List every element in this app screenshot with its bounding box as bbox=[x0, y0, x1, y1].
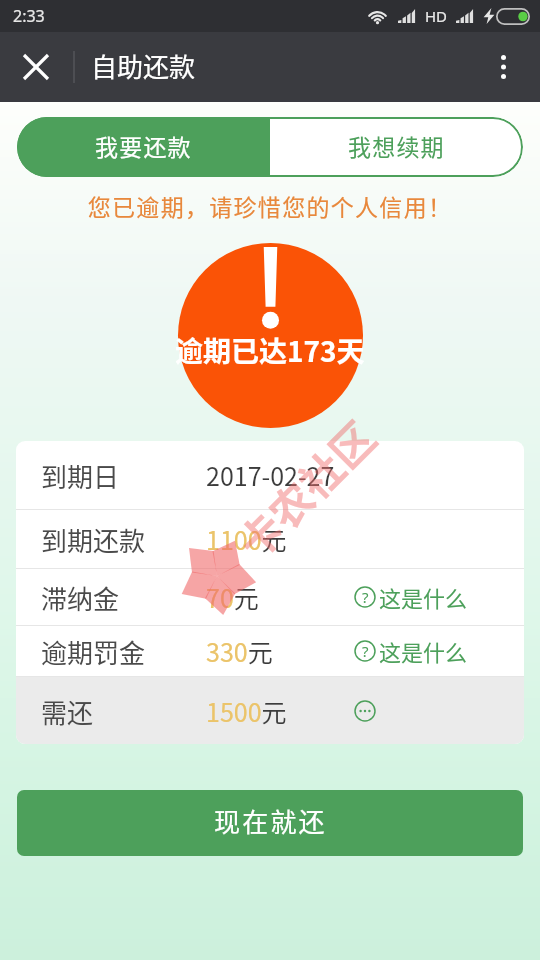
staticText: 1100元 bbox=[206, 521, 287, 557]
staticText: 到期日 bbox=[41, 457, 120, 495]
staticText: 滞纳金 bbox=[41, 579, 120, 617]
staticText: 卡农社区 bbox=[222, 406, 387, 571]
button[interactable]: Close bbox=[12, 43, 60, 91]
staticText: 逾期已达173天 bbox=[175, 330, 365, 371]
staticText: HD bbox=[425, 6, 448, 26]
staticText: ? bbox=[362, 641, 369, 661]
staticText: 现在就还 bbox=[214, 802, 327, 840]
staticText: 到期还款 bbox=[41, 521, 146, 559]
staticText: 这是什么 bbox=[379, 635, 468, 667]
button[interactable]: More options bbox=[479, 43, 527, 91]
staticText: 1500元 bbox=[206, 693, 287, 729]
staticText: 330元 bbox=[206, 633, 273, 669]
button[interactable]: 我要还款 bbox=[17, 117, 270, 177]
staticText: 2:33 bbox=[13, 5, 45, 27]
button[interactable]: ? bbox=[354, 581, 468, 613]
staticText: 我想续期 bbox=[348, 129, 445, 162]
staticText: 自助还款 bbox=[91, 47, 196, 85]
button[interactable]: ? bbox=[354, 635, 468, 667]
staticText: 我要还款 bbox=[95, 129, 192, 162]
button[interactable]: 现在就还 bbox=[17, 790, 523, 856]
button[interactable]: More bbox=[354, 700, 376, 722]
staticText: ? bbox=[362, 587, 369, 607]
staticText: 70元 bbox=[206, 579, 259, 615]
staticText: 2017-02-27 bbox=[206, 457, 335, 493]
staticText: 您已逾期，请珍惜您的个人信用！ bbox=[0, 189, 540, 222]
button[interactable]: 我想续期 bbox=[270, 117, 523, 177]
staticText: 这是什么 bbox=[379, 581, 468, 613]
staticText: 需还 bbox=[41, 693, 94, 731]
staticText: 逾期罚金 bbox=[41, 633, 146, 671]
